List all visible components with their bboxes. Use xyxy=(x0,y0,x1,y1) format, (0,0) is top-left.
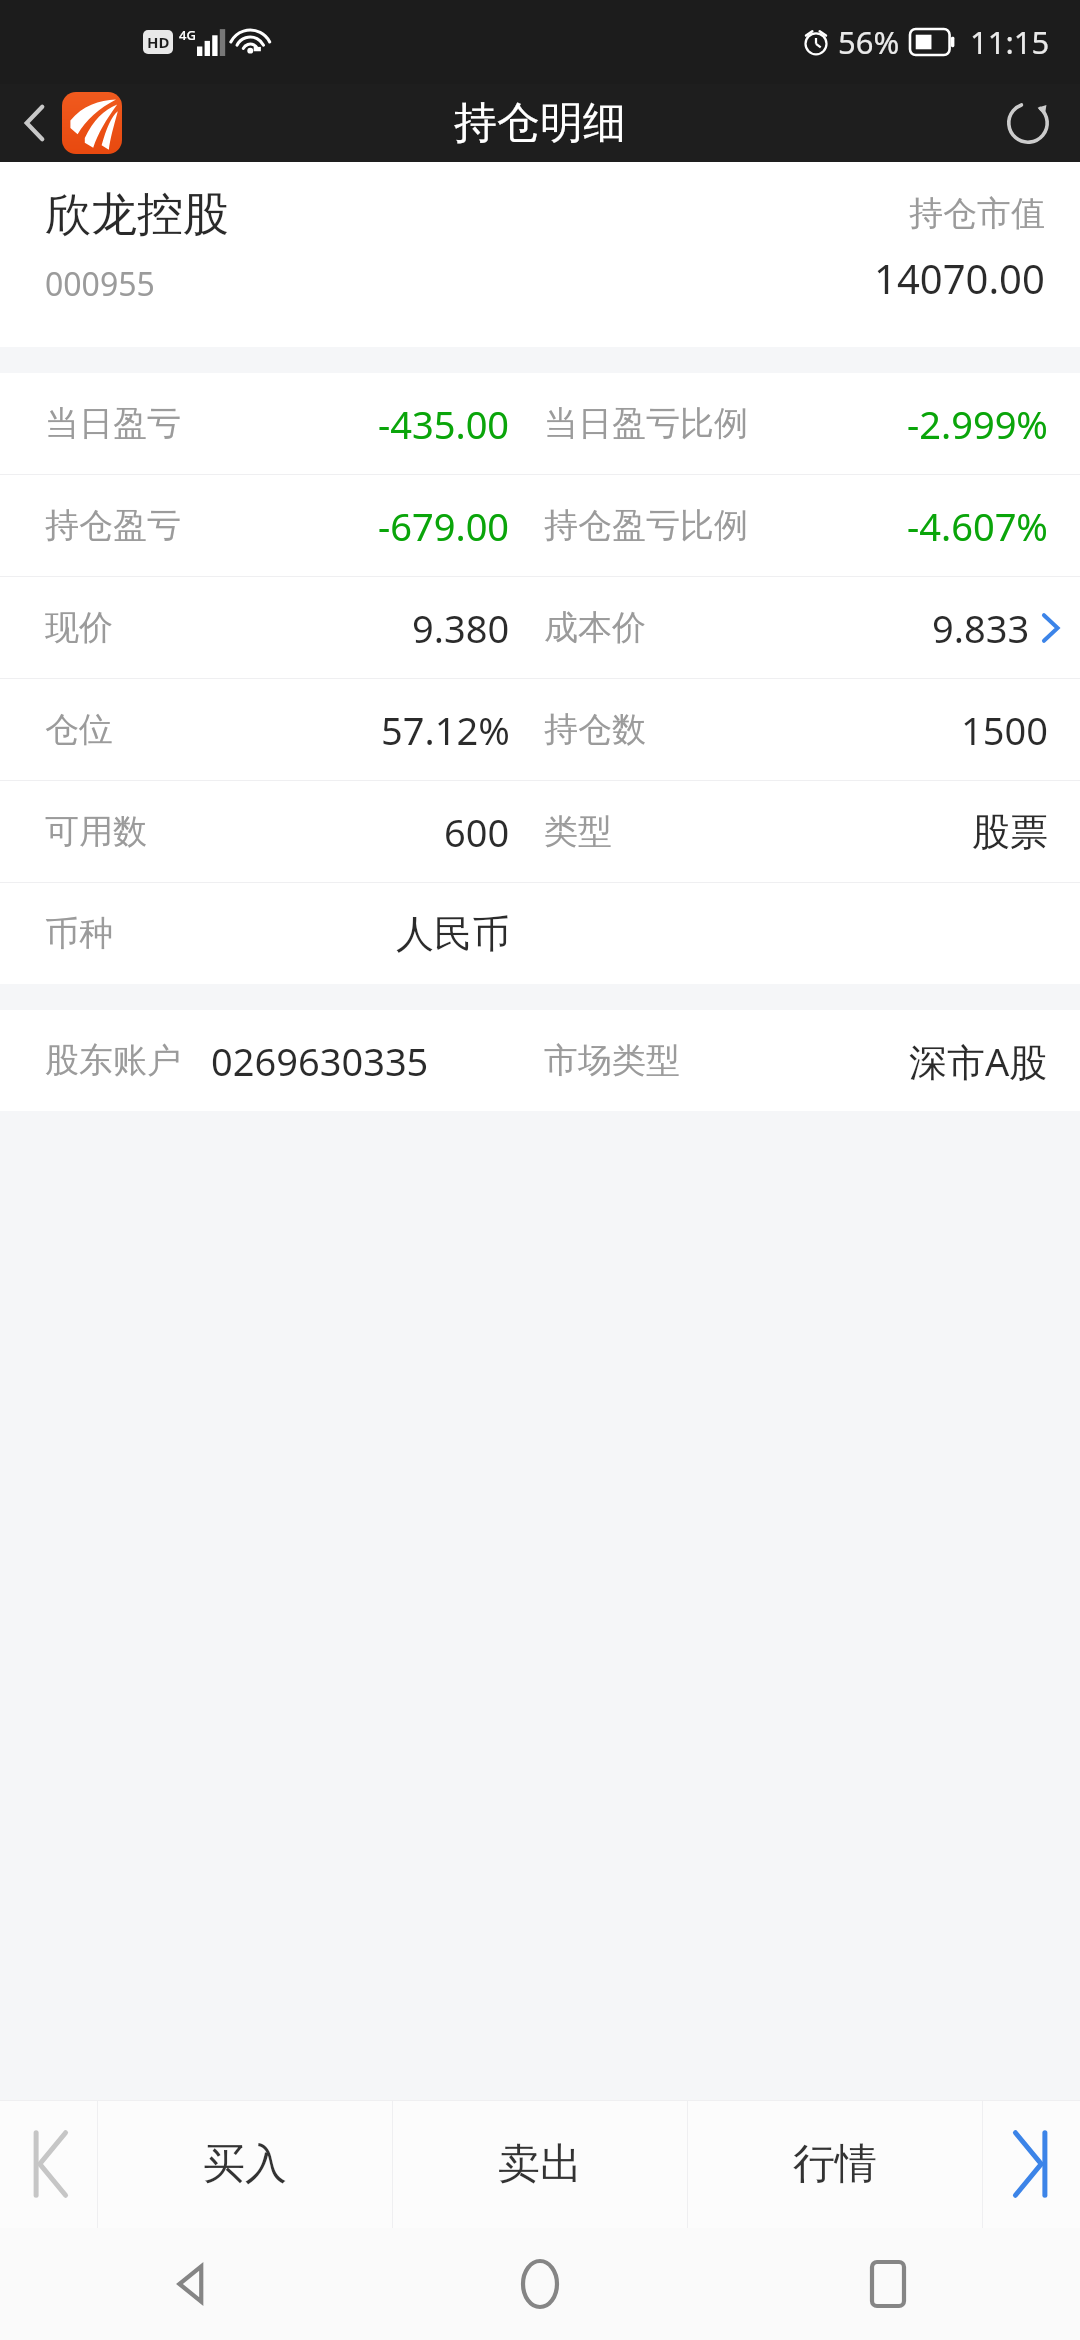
staticText: 可用数 xyxy=(45,810,147,853)
staticText: 57.12% xyxy=(381,704,510,756)
staticText: 类型 xyxy=(544,810,612,853)
staticText: 持仓数 xyxy=(544,708,646,751)
staticText: 14070.00 xyxy=(874,251,1045,305)
button[interactable]: Home xyxy=(498,2242,582,2326)
staticText: 000955 xyxy=(45,262,155,306)
button[interactable]: 卖出 xyxy=(393,2100,687,2228)
staticText: 欣龙控股 xyxy=(45,186,229,244)
button[interactable]: Refresh xyxy=(988,91,1080,155)
staticText: 仓位 xyxy=(45,708,113,751)
button[interactable]: 行情 xyxy=(688,2100,982,2228)
staticText: 持仓盈亏比例 xyxy=(544,504,748,547)
staticText: 买入 xyxy=(203,2138,287,2191)
button[interactable]: 仓位 xyxy=(0,679,1080,780)
button[interactable]: 币种 xyxy=(0,883,1080,984)
staticText: 11:15 xyxy=(970,21,1050,63)
staticText: 行情 xyxy=(793,2138,877,2191)
staticText: 币种 xyxy=(45,912,113,955)
staticText: 持仓明细 xyxy=(454,96,626,150)
button[interactable]: Previous xyxy=(0,2100,97,2228)
staticText: 56% xyxy=(838,21,900,63)
staticText: 深市A股 xyxy=(909,1035,1048,1087)
staticText: 当日盈亏 xyxy=(45,402,181,445)
staticText: 当日盈亏比例 xyxy=(544,402,748,445)
staticText: 股东账户 xyxy=(45,1039,181,1082)
button[interactable]: Next xyxy=(983,2100,1080,2228)
staticText: 9.833 xyxy=(932,602,1030,654)
staticText: 4G xyxy=(179,26,196,44)
staticText: 人民币 xyxy=(396,910,510,958)
button[interactable]: 欣龙控股 xyxy=(0,162,1080,347)
staticText: -2.999% xyxy=(907,398,1048,450)
button[interactable]: 股东账户 xyxy=(0,1010,1080,1111)
staticText: 600 xyxy=(444,806,510,858)
staticText: HD xyxy=(147,32,170,52)
staticText: -679.00 xyxy=(378,500,510,552)
button[interactable]: 可用数 xyxy=(0,781,1080,882)
staticText: 现价 xyxy=(45,606,113,649)
staticText: 持仓盈亏 xyxy=(45,504,181,547)
staticText: 成本价 xyxy=(544,606,646,649)
staticText: 9.380 xyxy=(412,602,510,654)
button[interactable]: 买入 xyxy=(98,2100,392,2228)
staticText: 卖出 xyxy=(498,2138,582,2191)
staticText: 持仓市值 xyxy=(909,192,1045,235)
button[interactable]: 现价 xyxy=(0,577,1080,678)
staticText: -435.00 xyxy=(378,398,510,450)
button[interactable]: App logo xyxy=(62,92,122,154)
staticText: 市场类型 xyxy=(544,1039,680,1082)
staticText: -4.607% xyxy=(907,500,1048,552)
staticText: 0269630335 xyxy=(211,1035,429,1087)
button[interactable]: Recents xyxy=(846,2242,930,2326)
button[interactable]: 当日盈亏 xyxy=(0,373,1080,474)
staticText: 1500 xyxy=(961,704,1048,756)
button[interactable]: Back xyxy=(0,84,132,162)
staticText: 股票 xyxy=(972,808,1048,856)
button[interactable]: 持仓盈亏 xyxy=(0,475,1080,576)
button[interactable]: Back xyxy=(150,2242,234,2326)
